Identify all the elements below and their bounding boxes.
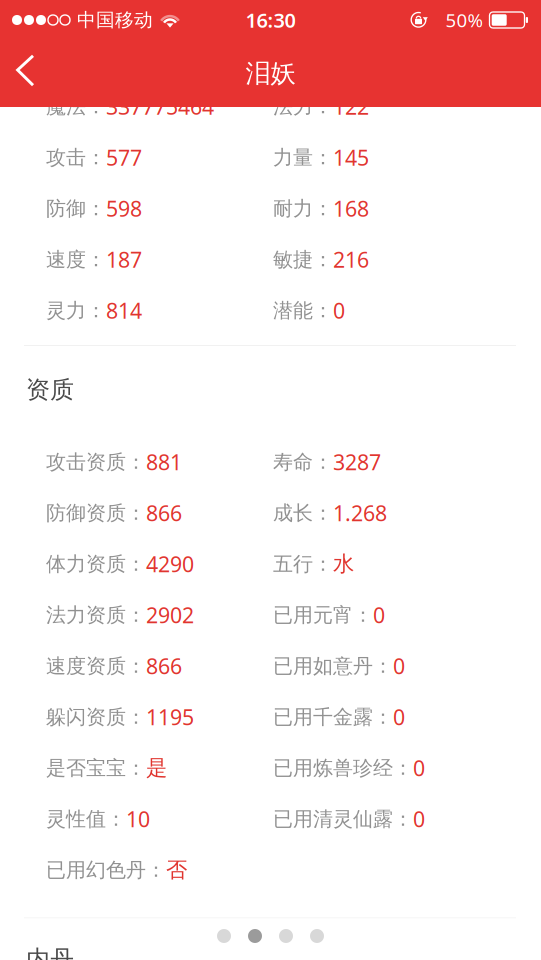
staticText: 已用清灵仙露： <box>273 807 413 831</box>
staticText: 寿命： <box>273 450 333 474</box>
staticText: 已用元宵： <box>273 603 373 627</box>
staticText: 是否宝宝： <box>46 756 146 780</box>
staticText: 潜能： <box>273 298 333 323</box>
staticText: 中国移动 <box>77 8 153 31</box>
staticText: 速度资质： <box>46 654 146 678</box>
staticText: 法力： <box>273 94 333 119</box>
staticText: 五行： <box>273 552 333 576</box>
staticText: 337775464 <box>106 92 214 121</box>
staticText: 是 <box>146 755 167 781</box>
staticText: 0 <box>373 601 385 629</box>
staticText: 防御资质： <box>46 501 146 525</box>
staticText: 已用炼兽珍经： <box>273 756 413 780</box>
staticText: 10 <box>126 805 150 833</box>
staticText: 成长： <box>273 501 333 525</box>
staticText: 敏捷： <box>273 247 333 272</box>
staticText: 已用千金露： <box>273 705 393 729</box>
staticText: 145 <box>333 143 369 172</box>
button[interactable]: Page 4 <box>310 929 324 943</box>
staticText: 泪妖 <box>245 58 295 89</box>
staticText: 866 <box>146 652 182 680</box>
button[interactable]: Page 1 <box>217 929 231 943</box>
staticText: 法力资质： <box>46 603 146 627</box>
button[interactable]: Page 2 <box>248 929 262 943</box>
staticText: 0 <box>413 754 425 782</box>
staticText: 598 <box>106 194 142 223</box>
staticText: 0 <box>333 296 345 325</box>
staticText: 水 <box>333 551 354 577</box>
staticText: 力量： <box>273 145 333 170</box>
staticText: 2902 <box>146 601 194 629</box>
staticText: 216 <box>333 245 369 274</box>
staticText: 16:30 <box>245 7 295 33</box>
staticText: 资质 <box>26 375 74 404</box>
staticText: 881 <box>146 448 182 476</box>
staticText: 攻击： <box>46 145 106 170</box>
staticText: 577 <box>106 143 142 172</box>
staticText: 866 <box>146 499 182 527</box>
button[interactable]: Back <box>0 47 55 100</box>
staticText: 耐力： <box>273 196 333 221</box>
staticText: 否 <box>166 857 187 883</box>
staticText: 灵性值： <box>46 807 126 831</box>
staticText: 攻击资质： <box>46 450 146 474</box>
staticText: 122 <box>333 92 369 121</box>
staticText: 速度： <box>46 247 106 272</box>
staticText: 躲闪资质： <box>46 705 146 729</box>
staticText: 814 <box>106 296 142 325</box>
staticText: 0 <box>413 805 425 833</box>
staticText: 1.268 <box>333 499 387 527</box>
staticText: 187 <box>106 245 142 274</box>
staticText: 体力资质： <box>46 552 146 576</box>
staticText: 3287 <box>333 448 381 476</box>
staticText: 防御： <box>46 196 106 221</box>
staticText: 已用如意丹： <box>273 654 393 678</box>
staticText: 已用幻色丹： <box>46 858 166 882</box>
staticText: 内丹 <box>26 944 74 960</box>
staticText: 50% <box>445 8 483 32</box>
staticText: 168 <box>333 194 369 223</box>
staticText: 灵力： <box>46 298 106 323</box>
staticText: 0 <box>393 652 405 680</box>
button[interactable]: Page 3 <box>279 929 293 943</box>
staticText: 魔法： <box>46 94 106 119</box>
staticText: 1195 <box>146 703 194 731</box>
staticText: 0 <box>393 703 405 731</box>
staticText: 4290 <box>146 550 194 578</box>
